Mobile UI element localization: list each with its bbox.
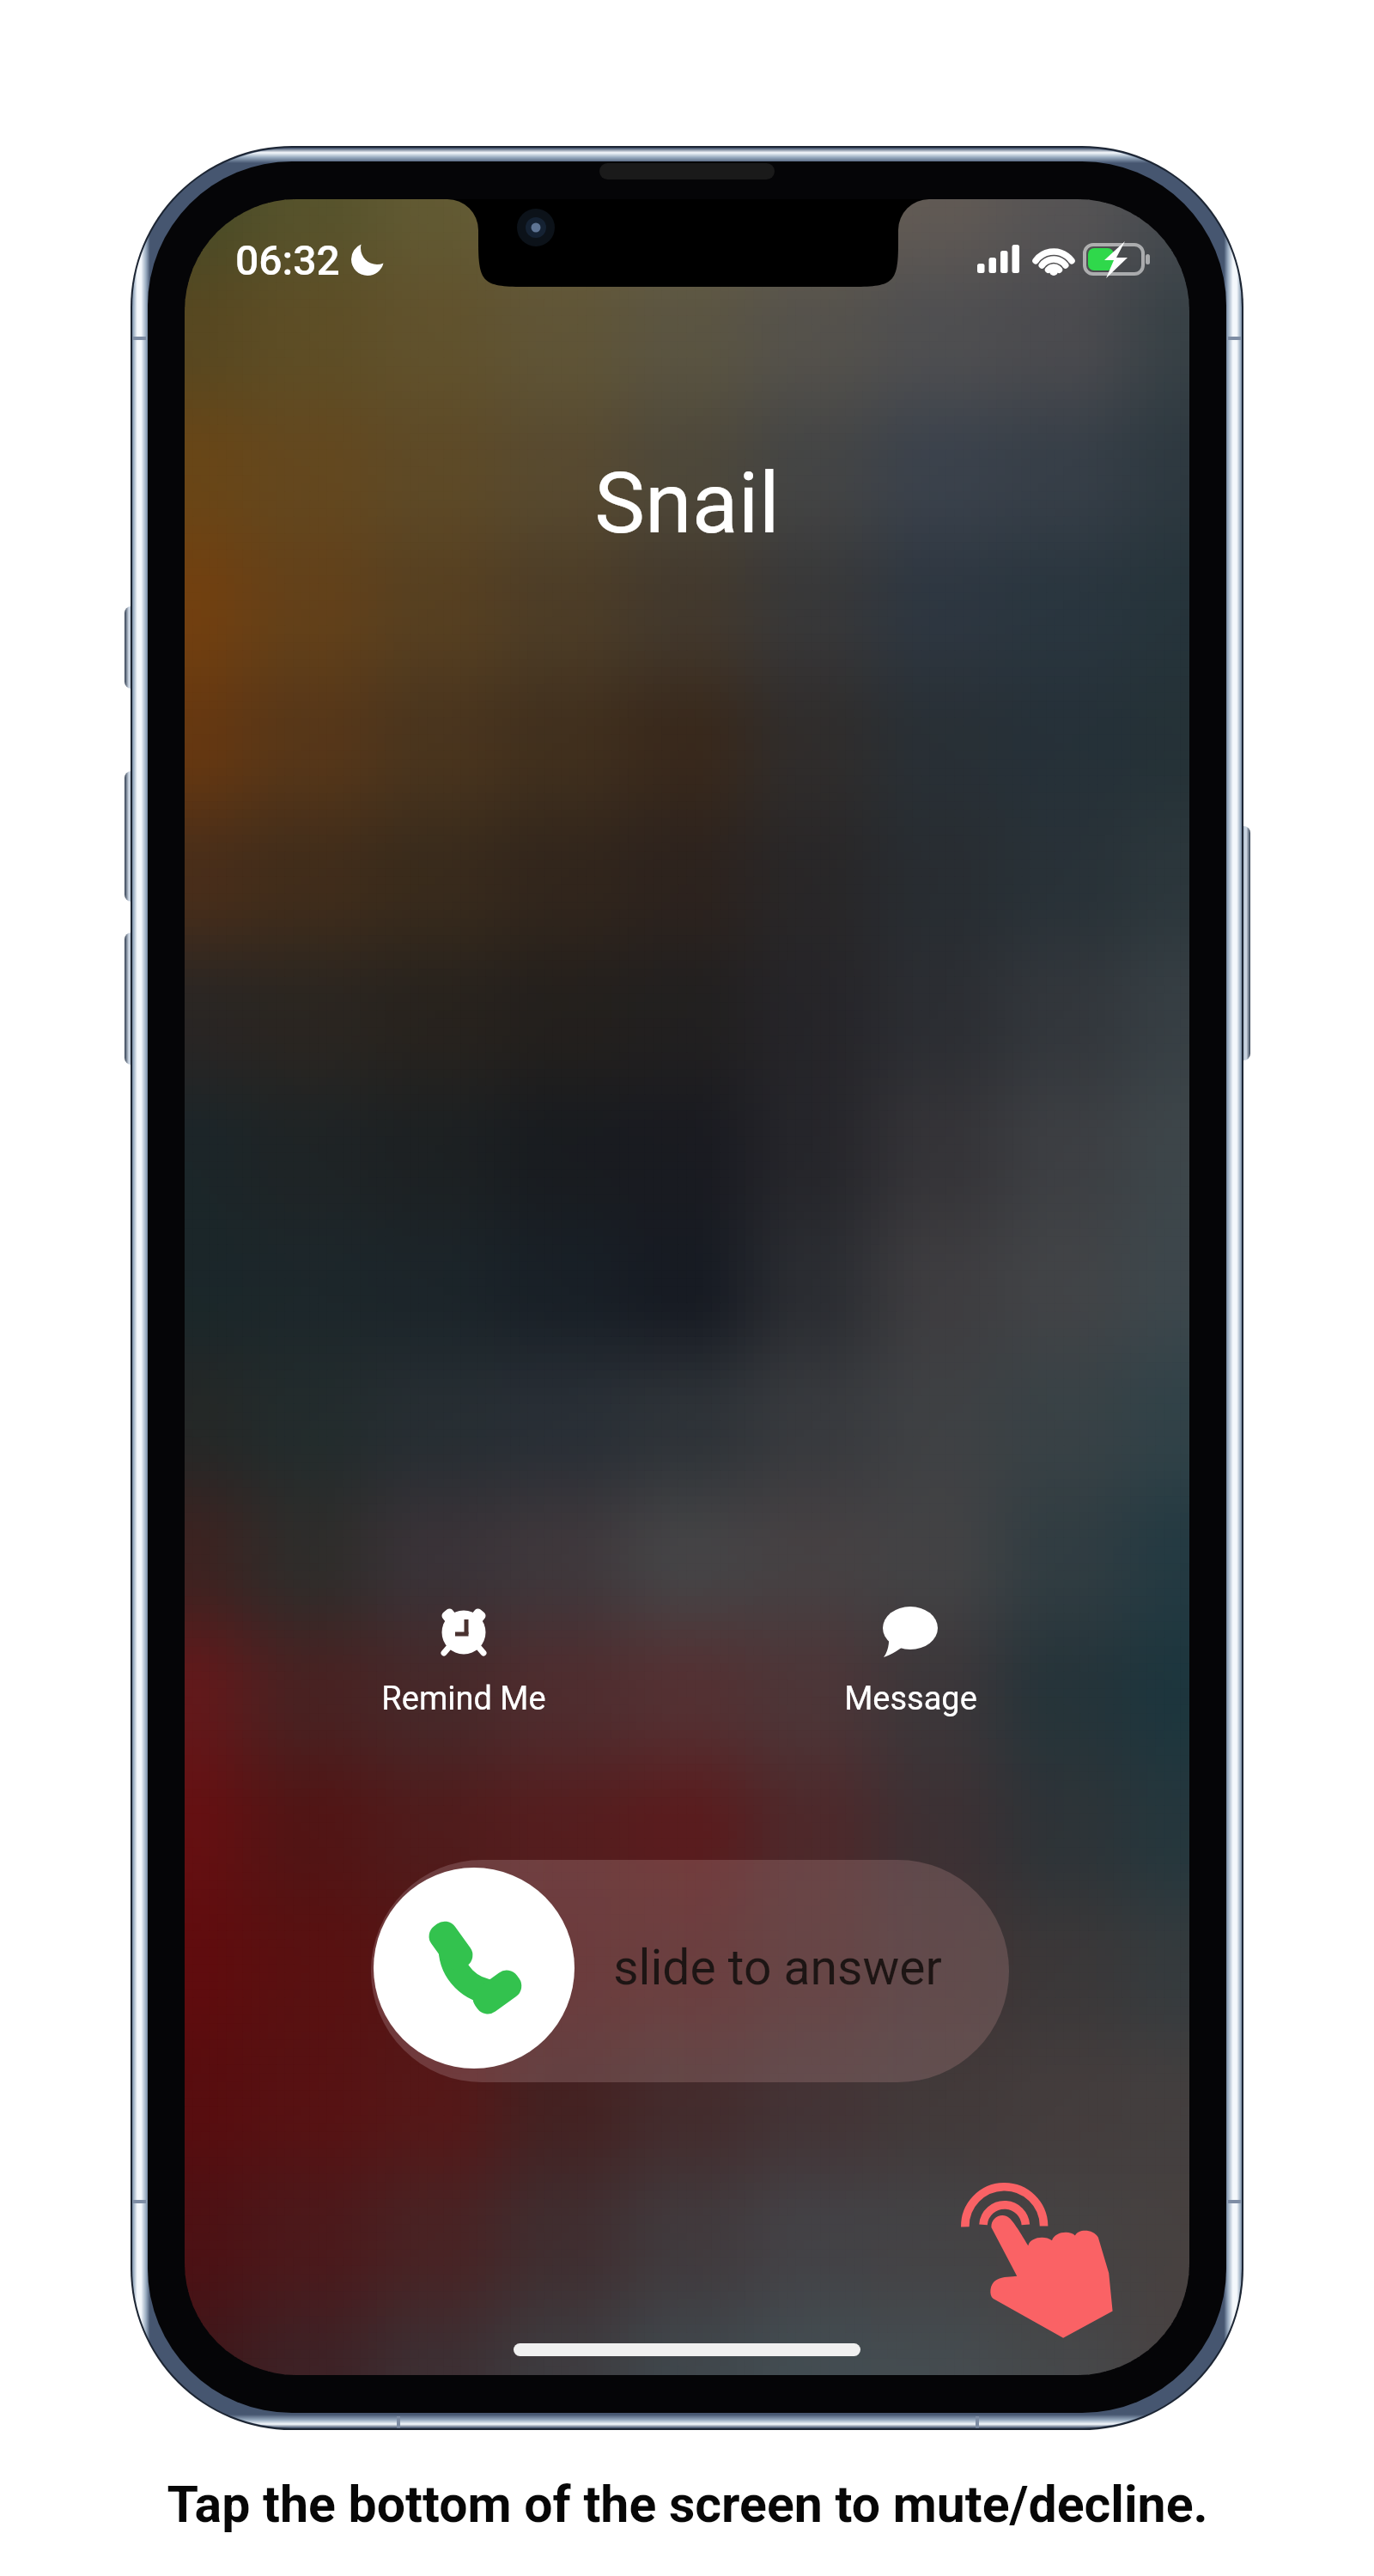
- staticText: Tap the bottom of the screen to mute/dec…: [167, 2475, 1208, 2534]
- staticText: slide to answer: [613, 1939, 942, 1996]
- button[interactable]: Slide to answer: [371, 1860, 1009, 2082]
- staticText: Message: [844, 1680, 977, 1718]
- staticText: Remind Me: [381, 1680, 546, 1718]
- staticText: 06:32: [235, 236, 340, 284]
- button[interactable]: Tap to mute or decline: [945, 2164, 1125, 2353]
- staticText: Snail: [594, 453, 780, 553]
- button[interactable]: Remind Me: [335, 1581, 593, 1718]
- button[interactable]: Message: [781, 1581, 1039, 1718]
